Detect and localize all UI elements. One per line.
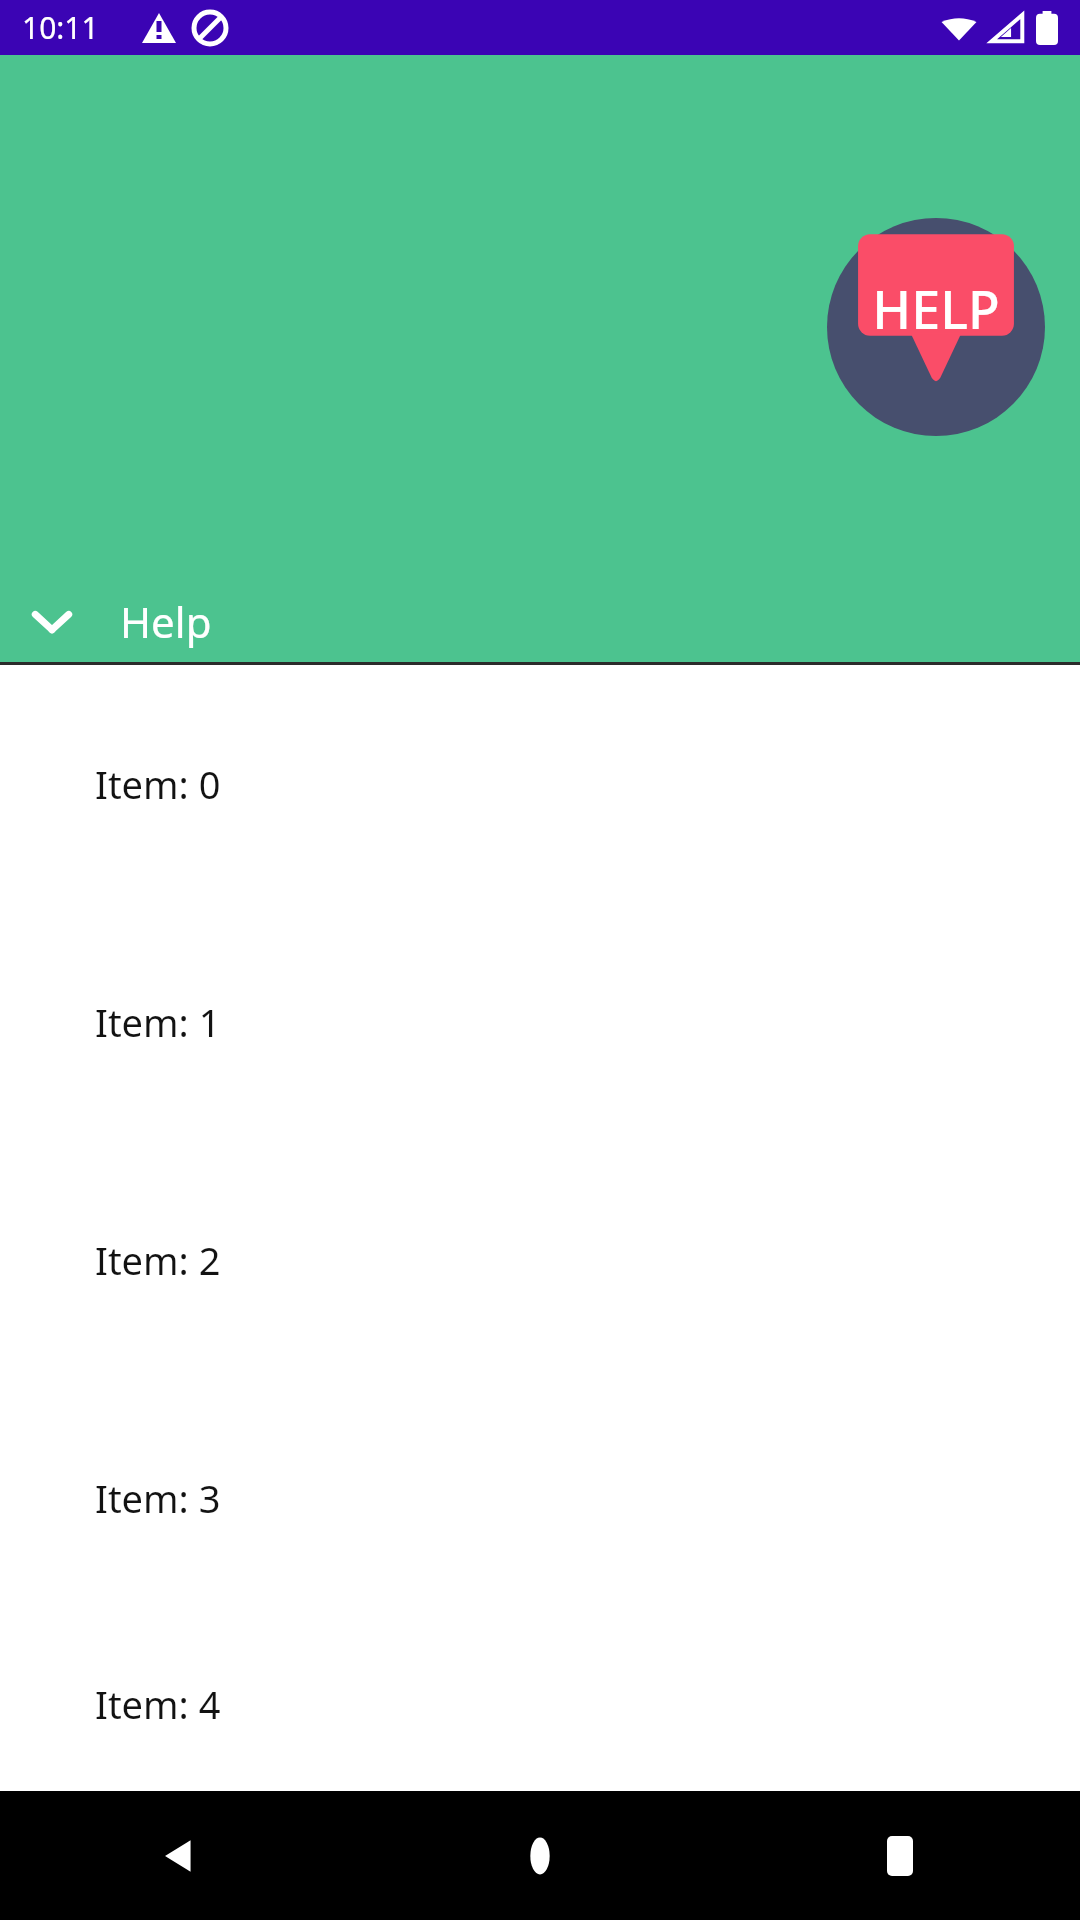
button[interactable]: Item: 2 <box>0 1141 1080 1379</box>
button[interactable]: Home <box>360 1791 720 1920</box>
button[interactable]: Recent apps <box>720 1791 1080 1920</box>
staticText: HELP <box>827 273 1045 344</box>
button[interactable]: Item: 1 <box>0 903 1080 1141</box>
staticText: Item: 0 <box>95 758 221 810</box>
other: Help <box>827 218 1045 436</box>
staticText: 10:11 <box>22 7 99 48</box>
staticText: Item: 1 <box>95 996 221 1048</box>
button[interactable]: Item: 4 <box>0 1617 1080 1791</box>
button[interactable]: Collapse <box>12 569 92 649</box>
button[interactable]: Back <box>0 1791 360 1920</box>
staticText: Help <box>120 593 212 650</box>
staticText: Item: 3 <box>95 1472 221 1524</box>
staticText: Item: 2 <box>95 1234 221 1286</box>
button[interactable]: Item: 3 <box>0 1379 1080 1617</box>
staticText: Item: 4 <box>95 1678 221 1730</box>
button[interactable]: Collapse <box>0 553 1080 665</box>
button[interactable]: Item: 0 <box>0 665 1080 903</box>
